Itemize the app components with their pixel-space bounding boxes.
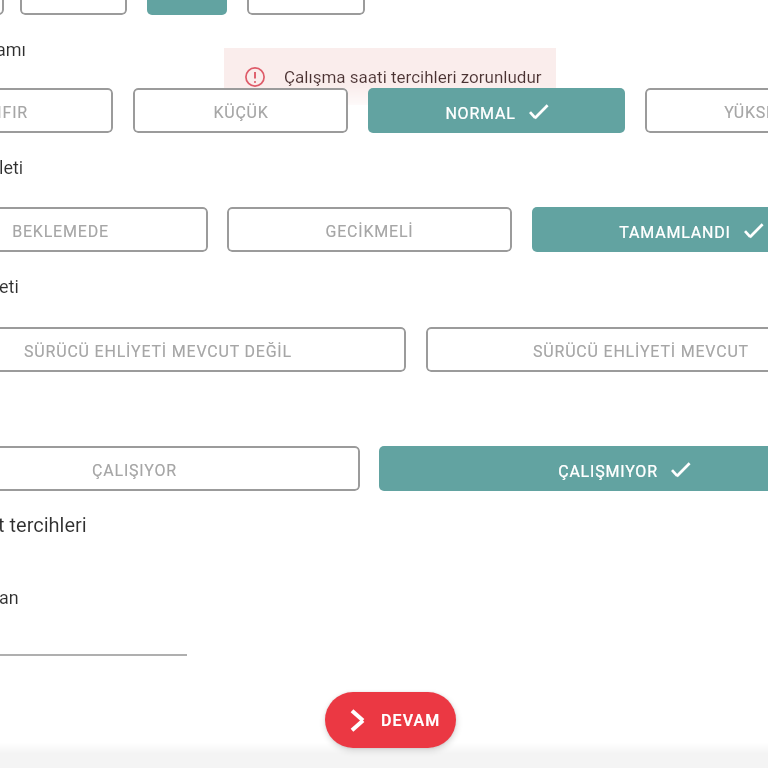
staticText: leti (0, 157, 24, 178)
staticText: GECİKMELİ (325, 222, 414, 241)
button[interactable]: Option (0, 0, 4, 15)
staticText: YÜKSEK (724, 103, 768, 122)
button[interactable]: DEVAM (325, 692, 456, 748)
staticText: NORMAL (445, 104, 516, 123)
staticText: SIFIR (0, 103, 28, 122)
staticText: t tercihleri (0, 513, 87, 536)
staticText: ÇALIŞMIYOR (558, 462, 658, 481)
button[interactable]: KÜÇÜK (133, 88, 348, 133)
button[interactable]: YÜKSEK (645, 88, 768, 133)
staticText: amı (0, 39, 27, 60)
button[interactable]: Option (20, 0, 127, 15)
button[interactable]: SIFIR (0, 88, 113, 133)
staticText: KÜÇÜK (213, 103, 269, 122)
staticText: DEVAM (381, 711, 441, 730)
staticText: TAMAMLANDI (619, 223, 731, 242)
button[interactable]: Option (247, 0, 365, 15)
staticText: an (0, 587, 19, 608)
button[interactable]: SÜRÜCÜ EHLİYETİ MEVCUT (426, 327, 768, 372)
staticText: ÇALIŞIYOR (92, 461, 177, 480)
button[interactable]: TAMAMLANDI (532, 207, 768, 252)
staticText: SÜRÜCÜ EHLİYETİ MEVCUT DEĞİL (24, 342, 292, 361)
staticText: BEKLEMEDE (12, 222, 109, 241)
button[interactable]: SÜRÜCÜ EHLİYETİ MEVCUT DEĞİL (0, 327, 406, 372)
staticText: SÜRÜCÜ EHLİYETİ MEVCUT (533, 342, 749, 361)
button[interactable]: GECİKMELİ (227, 207, 512, 252)
button[interactable]: NORMAL (368, 88, 625, 133)
button[interactable]: ÇALIŞIYOR (0, 446, 360, 491)
button[interactable]: ÇALIŞMIYOR (379, 446, 768, 491)
button[interactable]: BEKLEMEDE (0, 207, 208, 252)
staticText: Çalışma saati tercihleri zorunludur (284, 67, 542, 87)
other: Error (245, 67, 265, 87)
staticText: eti (0, 276, 19, 297)
button[interactable]: Option (147, 0, 227, 15)
